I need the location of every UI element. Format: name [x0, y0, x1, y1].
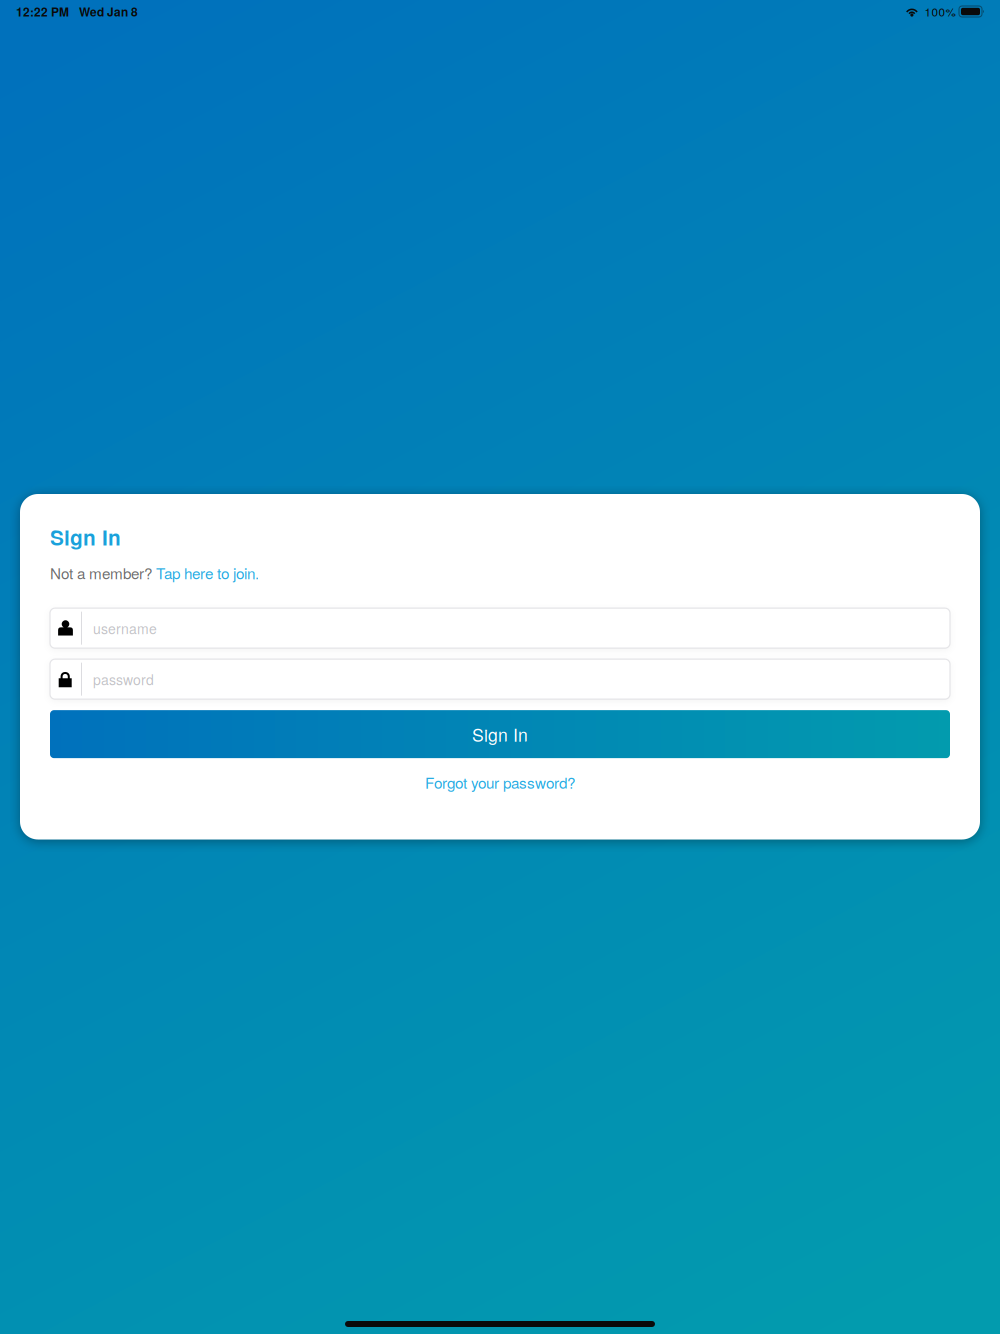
staticText: password — [93, 669, 154, 689]
staticText: 100% — [924, 3, 955, 20]
staticText: Not a member? — [50, 562, 152, 584]
staticText: Sign In — [472, 721, 528, 747]
button[interactable]: Forgot your password? — [50, 771, 950, 793]
staticText: username — [93, 618, 157, 638]
staticText: Wed Jan 8 — [79, 3, 138, 20]
staticText: Forgot your password? — [425, 771, 575, 793]
staticText: Sign In — [50, 522, 121, 552]
staticText: 12:22 PM — [16, 3, 69, 20]
button[interactable]: Sign In — [50, 710, 950, 758]
button[interactable]: Tap here to join. — [156, 562, 259, 584]
staticText: Tap here to join. — [156, 562, 259, 584]
